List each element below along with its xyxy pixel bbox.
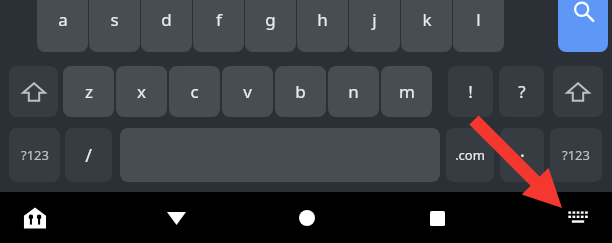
staticText: k bbox=[422, 8, 432, 31]
button[interactable]: x bbox=[116, 66, 167, 117]
button[interactable]: Shift bbox=[553, 66, 603, 117]
button[interactable]: ! bbox=[448, 66, 493, 117]
button[interactable]: j bbox=[349, 0, 400, 52]
button[interactable]: n bbox=[328, 66, 379, 117]
button[interactable]: a bbox=[37, 0, 88, 52]
button[interactable]: ?123 bbox=[550, 128, 602, 182]
staticText: / bbox=[85, 143, 92, 168]
button[interactable]: f bbox=[193, 0, 244, 52]
staticText: x bbox=[137, 80, 146, 103]
staticText: j bbox=[372, 8, 377, 31]
button[interactable]: c bbox=[169, 66, 220, 117]
button[interactable]: k bbox=[401, 0, 452, 52]
button[interactable]: .com bbox=[446, 128, 494, 182]
button[interactable]: Shift bbox=[9, 66, 58, 117]
staticText: .com bbox=[455, 146, 485, 164]
staticText: ! bbox=[468, 80, 473, 103]
staticText: g bbox=[265, 8, 276, 31]
staticText: z bbox=[85, 80, 93, 103]
button[interactable]: h bbox=[297, 0, 348, 52]
staticText: d bbox=[161, 8, 172, 31]
button[interactable]: Back bbox=[164, 206, 188, 230]
staticText: · bbox=[520, 143, 525, 168]
button[interactable]: / bbox=[65, 128, 112, 182]
button[interactable]: z bbox=[63, 66, 114, 117]
button[interactable]: v bbox=[222, 66, 273, 117]
button[interactable]: g bbox=[245, 0, 296, 52]
staticText: m bbox=[399, 80, 415, 103]
staticText: v bbox=[243, 80, 252, 103]
staticText: l bbox=[476, 8, 481, 31]
staticText: f bbox=[216, 8, 222, 31]
button[interactable]: m bbox=[381, 66, 432, 117]
button[interactable]: Search bbox=[558, 0, 608, 52]
staticText: n bbox=[348, 80, 359, 103]
staticText: b bbox=[295, 80, 306, 103]
button[interactable]: ? bbox=[499, 66, 544, 117]
button[interactable]: b bbox=[275, 66, 326, 117]
button[interactable]: Input method bbox=[20, 204, 50, 232]
button[interactable]: s bbox=[89, 0, 140, 52]
button[interactable]: Home bbox=[295, 206, 319, 230]
staticText: s bbox=[110, 8, 119, 31]
button[interactable]: Switch keyboard bbox=[565, 206, 591, 228]
staticText: h bbox=[317, 8, 328, 31]
button[interactable]: · bbox=[500, 128, 544, 182]
staticText: c bbox=[190, 80, 199, 103]
button[interactable]: ?123 bbox=[9, 128, 60, 182]
staticText: ?123 bbox=[21, 146, 49, 164]
staticText: a bbox=[58, 8, 68, 31]
button[interactable]: Recent apps bbox=[425, 206, 449, 230]
button[interactable]: l bbox=[453, 0, 504, 52]
staticText: ? bbox=[518, 80, 526, 103]
button[interactable]: d bbox=[141, 0, 192, 52]
staticText: ?123 bbox=[562, 146, 590, 164]
